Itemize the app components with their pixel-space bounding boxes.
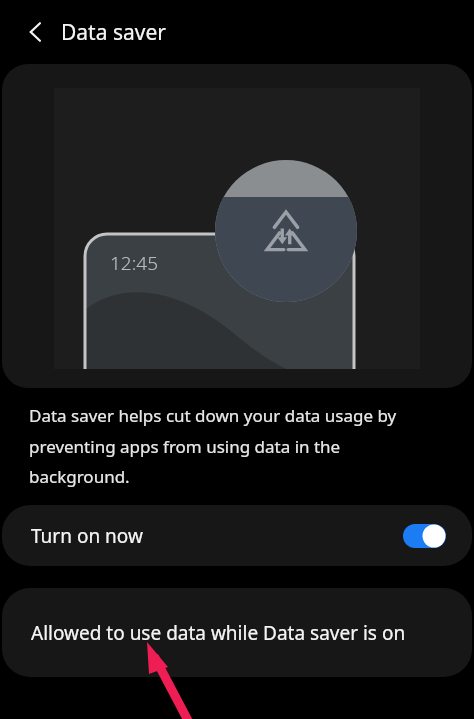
button[interactable]: Turn on now xyxy=(2,505,472,566)
staticText: Data saver xyxy=(61,18,166,47)
staticText: Data saver helps cut down your data usag… xyxy=(29,404,428,488)
button[interactable]: Back xyxy=(16,12,56,52)
staticText: Allowed to use data while Data saver is … xyxy=(31,620,406,646)
button[interactable]: Turn on Data saver toggle xyxy=(403,524,446,548)
staticText: 12:45 xyxy=(110,250,159,276)
staticText: Turn on now xyxy=(31,523,143,549)
button[interactable]: Allowed to use data while Data saver is … xyxy=(2,588,472,677)
